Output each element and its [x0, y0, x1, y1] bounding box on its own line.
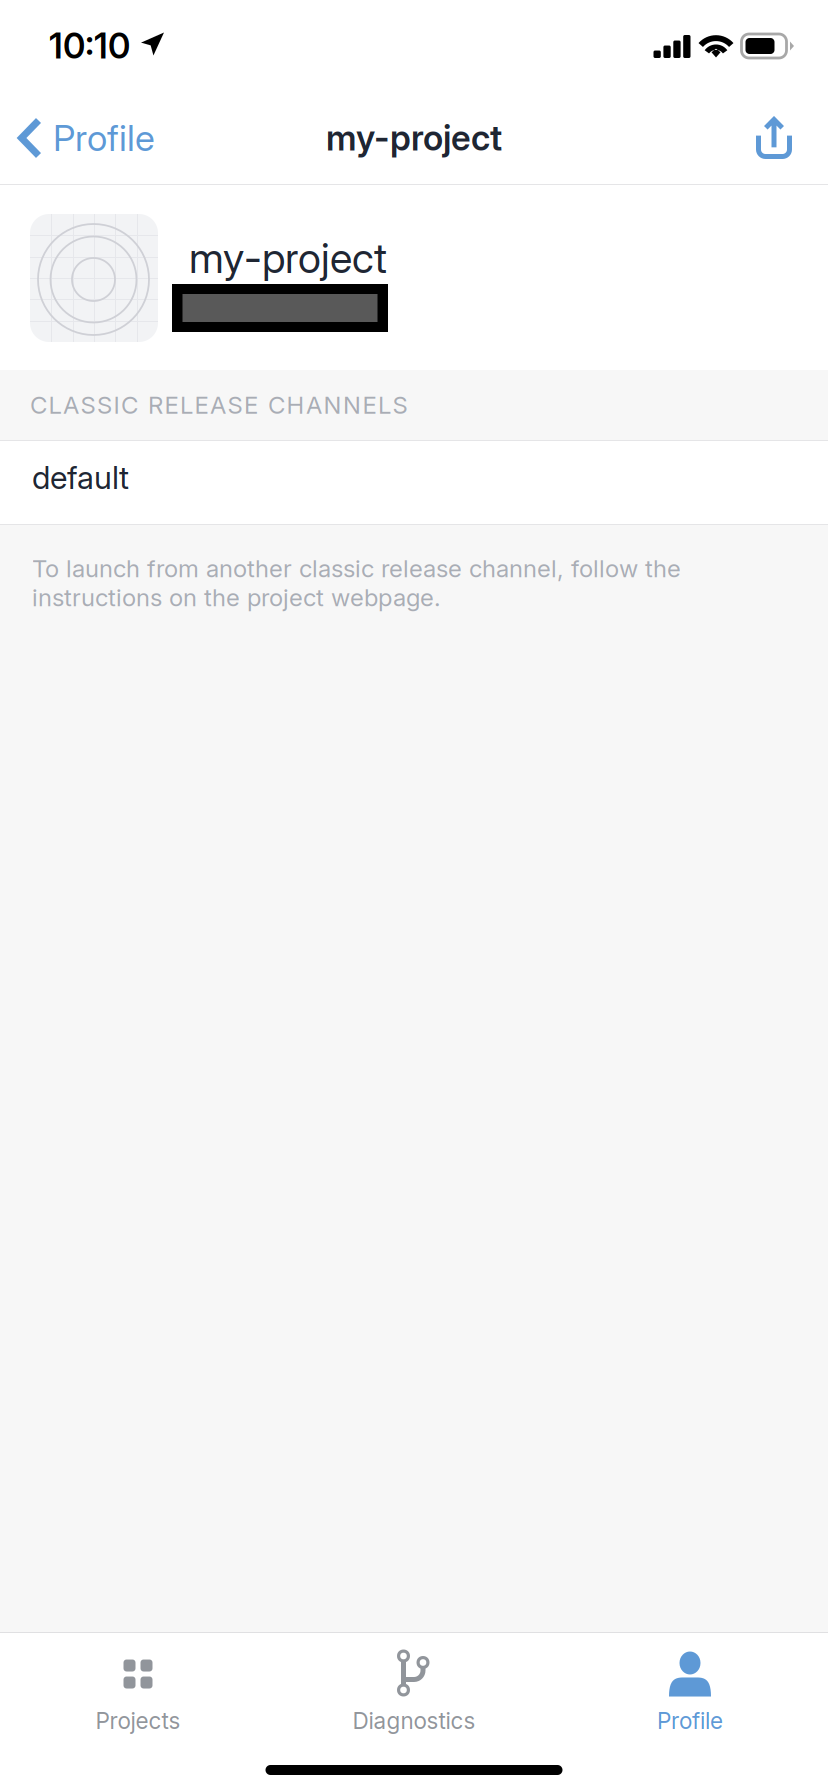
staticText: Profile: [53, 116, 155, 160]
staticText: CLASSIC RELEASE CHANNELS: [30, 390, 407, 419]
button[interactable]: Diagnostics: [276, 1633, 552, 1764]
button[interactable]: [728, 92, 820, 184]
staticText: Projects: [95, 1707, 180, 1734]
button[interactable]: Projects: [0, 1633, 276, 1764]
button[interactable]: default: [0, 441, 828, 524]
staticText: 10:10: [49, 25, 130, 67]
staticText: To launch from another classic release c…: [32, 554, 681, 612]
staticText: default: [32, 458, 129, 496]
staticText: Profile: [657, 1707, 723, 1734]
button[interactable]: Profile: [552, 1633, 828, 1764]
staticText: my-project: [189, 233, 387, 283]
button[interactable]: Profile: [0, 92, 171, 184]
staticText: Diagnostics: [352, 1707, 475, 1734]
staticText: my-project: [326, 117, 502, 159]
